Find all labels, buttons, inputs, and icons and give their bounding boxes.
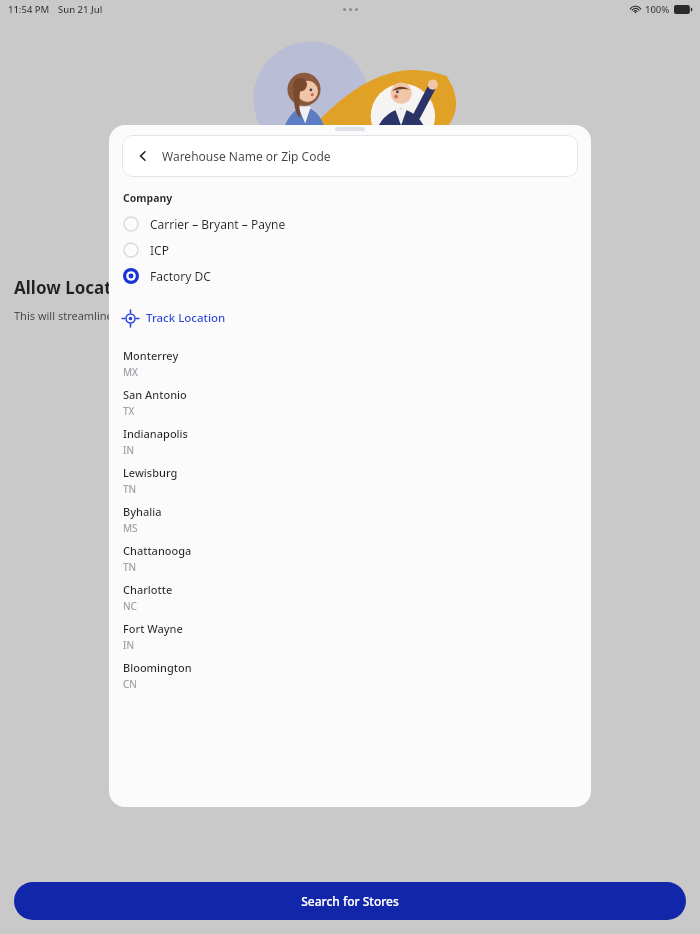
button[interactable]: Bloomington	[109, 656, 591, 695]
staticText: IN	[123, 443, 134, 457]
staticText: Search for Stores	[301, 893, 399, 909]
staticText: Lewisburg	[123, 465, 178, 480]
staticText: Warehouse Name or Zip Code	[162, 148, 331, 164]
staticText: Carrier – Bryant – Payne	[150, 216, 286, 232]
staticText: Company	[123, 191, 173, 205]
button[interactable]: Track Location	[123, 307, 226, 329]
staticText: Bloomington	[123, 660, 192, 675]
button[interactable]: Fort Wayne	[109, 617, 591, 656]
staticText: IN	[123, 638, 134, 652]
staticText: Charlotte	[123, 582, 173, 597]
staticText: Sun 21 Jul	[58, 3, 103, 16]
staticText: ICP	[150, 242, 169, 258]
button[interactable]: Factory DC	[109, 263, 591, 289]
staticText: TX	[123, 404, 135, 418]
staticText: CN	[123, 677, 137, 691]
staticText: 11:54 PM	[8, 3, 50, 16]
other: Back	[136, 149, 150, 163]
staticText: TN	[123, 560, 137, 574]
button[interactable]: Search for Stores	[14, 882, 686, 920]
staticText: Byhalia	[123, 504, 162, 519]
staticText: San Antonio	[123, 387, 187, 402]
button[interactable]: Indianapolis	[109, 422, 591, 461]
staticText: Monterrey	[123, 348, 179, 363]
staticText: Indianapolis	[123, 426, 188, 441]
button[interactable]: Monterrey	[109, 344, 591, 383]
staticText: This will streamline your store search	[14, 308, 206, 323]
staticText: 100%	[645, 3, 670, 16]
button[interactable]: Byhalia	[109, 500, 591, 539]
staticText: Fort Wayne	[123, 621, 183, 636]
staticText: MX	[123, 365, 138, 379]
staticText: Chattanooga	[123, 543, 192, 558]
button[interactable]: Charlotte	[109, 578, 591, 617]
staticText: Allow Location	[14, 276, 139, 299]
button[interactable]: Back	[122, 135, 578, 177]
staticText: Track Location	[146, 310, 226, 326]
button[interactable]: Chattanooga	[109, 539, 591, 578]
staticText: TN	[123, 482, 137, 496]
staticText: Factory DC	[150, 268, 211, 284]
button[interactable]: Carrier – Bryant – Payne	[109, 211, 591, 237]
button[interactable]: San Antonio	[109, 383, 591, 422]
button[interactable]: ICP	[109, 237, 591, 263]
staticText: NC	[123, 599, 137, 613]
button[interactable]: Lewisburg	[109, 461, 591, 500]
staticText: MS	[123, 521, 138, 535]
